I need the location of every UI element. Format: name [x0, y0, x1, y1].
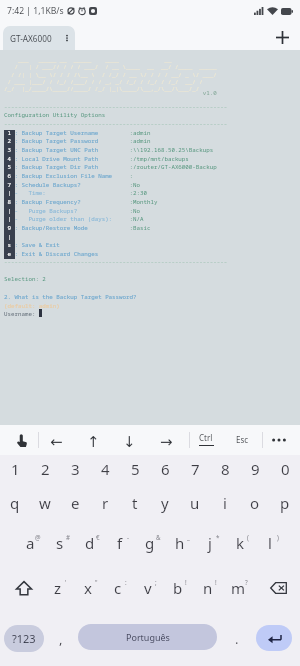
- button[interactable]: y: [150, 483, 180, 523]
- staticText: 8 : Backup Frequency? :Monthly: [4, 198, 158, 206]
- button[interactable]: Ctrl: [194, 432, 218, 446]
- staticText: !: [185, 578, 187, 586]
- staticText: y: [161, 493, 169, 513]
- button[interactable]: d: [75, 523, 105, 563]
- staticText: ): [277, 533, 279, 541]
- staticText: Username:: [4, 310, 36, 318]
- button[interactable]: Left: [42, 427, 70, 455]
- button[interactable]: s: [45, 523, 75, 563]
- button[interactable]: u: [180, 483, 210, 523]
- staticText: p: [280, 493, 290, 513]
- staticText: Configuration Utility Options: [4, 111, 106, 119]
- staticText: 7 : Schedule Backups? :No: [4, 181, 141, 189]
- button[interactable]: p: [270, 483, 300, 523]
- staticText: ↓: [123, 433, 136, 450]
- button[interactable]: Right: [152, 427, 180, 455]
- button[interactable]: o: [240, 483, 270, 523]
- staticText: 3 : Backup Target UNC Path :\\192.168.50…: [4, 146, 214, 154]
- button[interactable]: v: [133, 568, 163, 608]
- button[interactable]: x: [73, 568, 103, 608]
- staticText: ;: [155, 578, 157, 586]
- staticText: 1: [11, 459, 20, 479]
- staticText: !: [215, 578, 217, 586]
- button[interactable]: 4: [90, 449, 120, 489]
- staticText: i: [223, 493, 227, 513]
- staticText: 6: [161, 459, 170, 479]
- button[interactable]: a: [15, 523, 45, 563]
- staticText: | - Time: :2:30: [4, 189, 147, 197]
- button[interactable]: 0: [270, 449, 300, 489]
- staticText: -: [127, 533, 129, 541]
- staticText: j: [208, 533, 212, 553]
- button[interactable]: g: [135, 523, 165, 563]
- button[interactable]: n: [193, 568, 223, 608]
- staticText: | - Purge older than (days): :N/A: [4, 215, 144, 223]
- button[interactable]: New tab: [267, 24, 297, 50]
- button[interactable]: 3: [60, 449, 90, 489]
- button[interactable]: h: [165, 523, 195, 563]
- button[interactable]: More options: [266, 429, 292, 451]
- button[interactable]: t: [120, 483, 150, 523]
- button[interactable]: z: [43, 568, 73, 608]
- button[interactable]: i: [210, 483, 240, 523]
- button[interactable]: f: [105, 523, 135, 563]
- button[interactable]: Touch input mode: [7, 429, 35, 451]
- staticText: 7:42 | 1,1KB/s: [7, 5, 64, 17]
- staticText: ----------------------------------------…: [4, 258, 228, 266]
- staticText: 6 : Backup Exclusion File Name :: [4, 172, 134, 180]
- button[interactable]: .: [224, 625, 250, 652]
- button[interactable]: ,: [48, 625, 74, 652]
- staticText: 9: [251, 459, 260, 479]
- staticText: 5: [131, 459, 140, 479]
- button[interactable]: 5: [120, 449, 150, 489]
- button[interactable]: Down: [115, 427, 143, 455]
- staticText: z: [54, 578, 62, 598]
- button[interactable]: 9: [240, 449, 270, 489]
- staticText: &: [156, 533, 161, 541]
- staticText: a: [26, 533, 35, 553]
- staticText: l: [268, 533, 272, 553]
- staticText: 2. What is the Backup Target Password?: [4, 293, 137, 301]
- staticText: r: [102, 493, 109, 513]
- button[interactable]: j: [195, 523, 225, 563]
- button[interactable]: k: [225, 523, 255, 563]
- staticText: x: [84, 578, 92, 598]
- button[interactable]: Shift: [2, 568, 46, 608]
- staticText: v1.0: [4, 89, 217, 97]
- button[interactable]: l: [255, 523, 285, 563]
- button[interactable]: ?123: [4, 625, 44, 652]
- staticText: e : Exit & Discard Changes: [4, 250, 99, 258]
- staticText: →: [160, 433, 173, 450]
- button[interactable]: 2: [30, 449, 60, 489]
- button[interactable]: q: [0, 483, 30, 523]
- staticText: 8: [221, 459, 230, 479]
- button[interactable]: Backspace: [256, 568, 300, 608]
- button[interactable]: Up: [79, 427, 107, 455]
- button[interactable]: 6: [150, 449, 180, 489]
- button[interactable]: Enter: [256, 625, 292, 651]
- button[interactable]: c: [103, 568, 133, 608]
- button[interactable]: Português: [78, 624, 217, 650]
- staticText: 5 : Backup Target Dir Path :/router/GT-A…: [4, 163, 217, 171]
- button[interactable]: b: [163, 568, 193, 608]
- staticText: k: [236, 533, 245, 553]
- staticText: ↑: [87, 433, 100, 450]
- button[interactable]: 1: [0, 449, 30, 489]
- button[interactable]: w: [30, 483, 60, 523]
- staticText: ?: [245, 578, 248, 586]
- staticText: 0: [281, 459, 290, 479]
- staticText: ?123: [12, 631, 36, 646]
- button[interactable]: 8: [210, 449, 240, 489]
- button[interactable]: m: [223, 568, 253, 608]
- staticText: w: [39, 493, 51, 513]
- button[interactable]: r: [90, 483, 120, 523]
- button[interactable]: Esc: [230, 431, 254, 448]
- staticText: ': [65, 578, 67, 586]
- button[interactable]: GT-AX6000: [3, 26, 75, 50]
- staticText: .: [235, 630, 239, 648]
- staticText: |: [4, 233, 15, 241]
- button[interactable]: e: [60, 483, 90, 523]
- button[interactable]: 7: [180, 449, 210, 489]
- staticText: GT-AX6000: [10, 33, 52, 44]
- staticText: g: [145, 533, 155, 553]
